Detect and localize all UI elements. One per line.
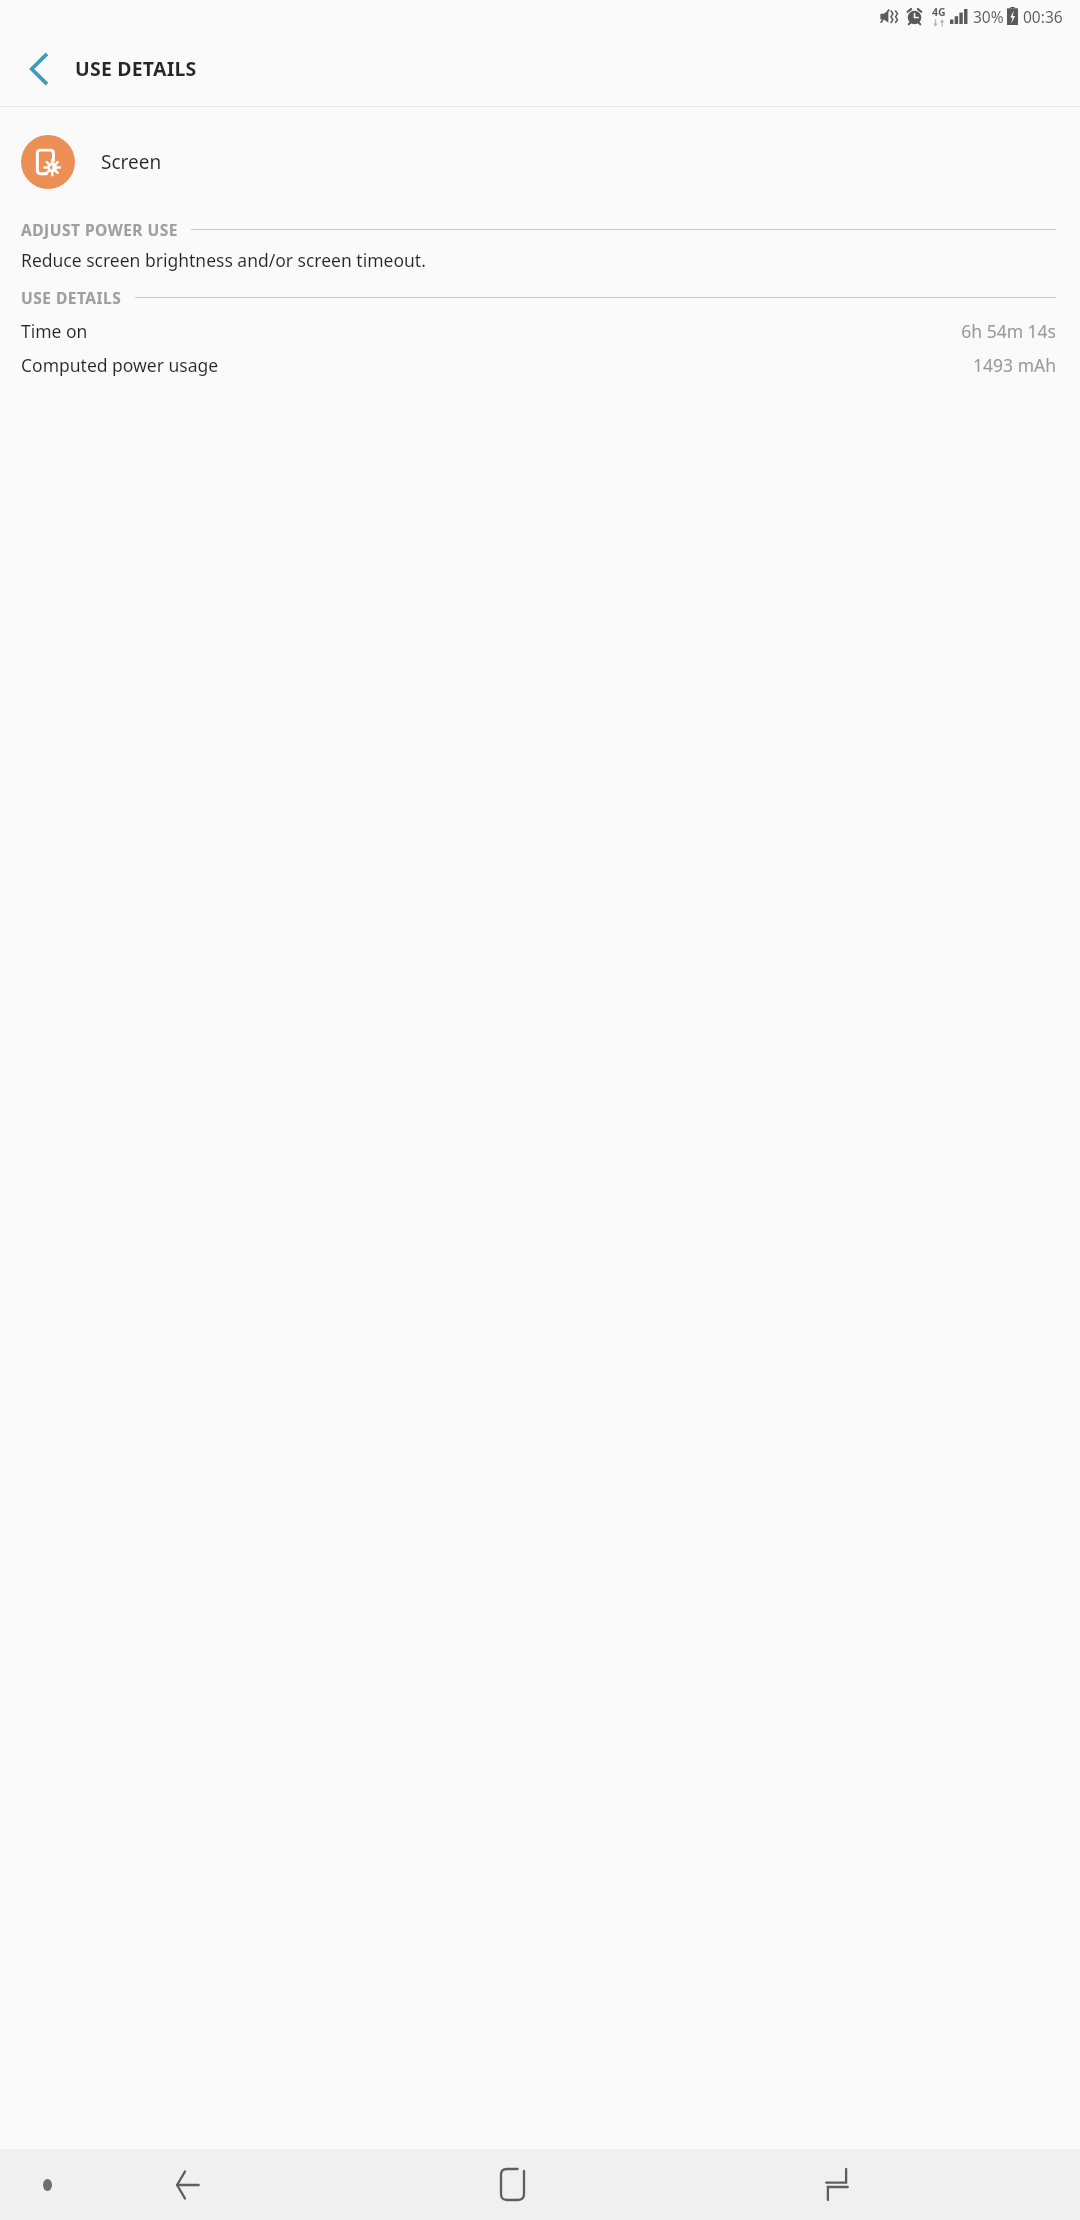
button[interactable]: Recent apps (800, 2149, 874, 2220)
staticText: Screen (101, 149, 162, 175)
staticText: 4G (932, 5, 946, 19)
staticText: Time on (21, 319, 88, 343)
button[interactable]: Back (14, 45, 62, 93)
staticText: USE DETAILS (75, 55, 197, 82)
staticText: USE DETAILS (21, 287, 122, 308)
button[interactable]: Back (150, 2149, 224, 2220)
staticText: 30% (973, 6, 1004, 27)
staticText: ADJUST POWER USE (21, 219, 178, 240)
staticText: Computed power usage (21, 353, 219, 377)
staticText: 1493 mAh (973, 353, 1056, 377)
button[interactable]: Menu indicator (34, 2172, 60, 2198)
staticText: Reduce screen brightness and/or screen t… (21, 248, 426, 272)
button[interactable]: Computed power usage (0, 350, 1080, 380)
staticText: 6h 54m 14s (961, 319, 1056, 343)
staticText: 00:36 (1023, 6, 1063, 27)
button[interactable]: Time on (0, 316, 1080, 346)
button[interactable]: Screen (0, 131, 1080, 193)
button[interactable]: Home (475, 2149, 549, 2220)
